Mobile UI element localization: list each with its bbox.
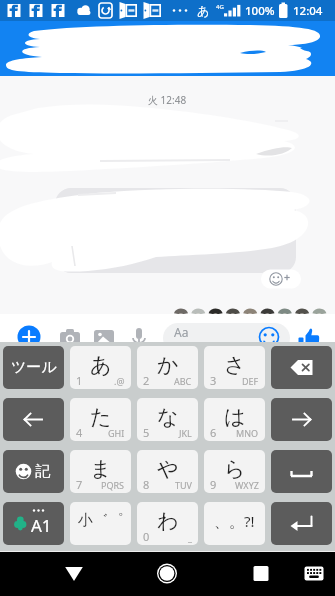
staticText: Aa xyxy=(174,324,189,340)
staticText: 0 xyxy=(143,529,150,544)
button[interactable]: emojikey xyxy=(3,450,64,493)
staticText: 4 xyxy=(76,425,83,440)
staticText: MNO xyxy=(236,427,259,439)
button[interactable]: Home xyxy=(147,552,187,596)
staticText: _ xyxy=(188,531,192,543)
button[interactable]: right xyxy=(271,398,332,441)
staticText: DEF xyxy=(242,375,259,387)
button[interactable]: enter xyxy=(271,502,332,545)
button[interactable]: た xyxy=(70,398,131,441)
button[interactable]: な xyxy=(137,398,198,441)
staticText: 記 xyxy=(35,462,50,481)
staticText: 1 xyxy=(76,373,83,388)
staticText: は xyxy=(224,404,246,430)
staticText: 火 12:48 xyxy=(148,93,187,107)
staticText: 小゛゜ xyxy=(78,511,124,530)
staticText: .@ xyxy=(114,375,125,387)
staticText: 7 xyxy=(76,477,83,492)
button[interactable]: bksp xyxy=(271,346,332,389)
staticText: 6 xyxy=(210,425,217,440)
button[interactable]: あ xyxy=(70,346,131,389)
staticText: ま xyxy=(90,456,112,482)
staticText: 9 xyxy=(210,477,217,492)
staticText: あ xyxy=(90,352,112,378)
staticText: 8 xyxy=(143,477,150,492)
staticText: TUV xyxy=(175,479,192,491)
button[interactable]: や xyxy=(137,450,198,493)
staticText: さ xyxy=(224,352,246,378)
button[interactable]: か xyxy=(137,346,198,389)
button[interactable]: は xyxy=(204,398,265,441)
staticText: 2 xyxy=(143,373,150,388)
staticText: ツール xyxy=(11,358,57,377)
staticText: 12:04 xyxy=(293,3,323,19)
button[interactable]: わ xyxy=(137,502,198,545)
staticText: 、。?! xyxy=(214,511,255,531)
staticText: PQRS xyxy=(101,479,125,491)
button[interactable]: ま xyxy=(70,450,131,493)
staticText: ら xyxy=(224,456,246,482)
button[interactable]: Switch keyboard xyxy=(294,552,334,596)
staticText: ABC xyxy=(174,375,192,387)
button[interactable]: さ xyxy=(204,346,265,389)
staticText: 3 xyxy=(210,373,217,388)
button[interactable]: Back xyxy=(54,552,94,596)
staticText: 5 xyxy=(143,425,150,440)
button[interactable]: ツール xyxy=(3,346,64,389)
button[interactable]: 小゛゜ xyxy=(70,502,131,545)
button[interactable]: a1 xyxy=(3,502,64,545)
staticText: や xyxy=(157,456,179,482)
button[interactable]: Recent apps xyxy=(241,552,281,596)
staticText: JKL xyxy=(179,427,192,439)
staticText: あ xyxy=(197,3,210,18)
staticText: わ xyxy=(157,508,179,534)
staticText: 4G xyxy=(216,3,224,11)
staticText: WXYZ xyxy=(235,479,259,491)
button[interactable]: ら xyxy=(204,450,265,493)
staticText: た xyxy=(90,404,112,430)
staticText: GHI xyxy=(108,427,125,439)
staticText: か xyxy=(157,352,179,378)
staticText: な xyxy=(157,404,179,430)
button[interactable]: 、。?! xyxy=(204,502,265,545)
staticText: 100% xyxy=(245,3,275,19)
staticText: A1 xyxy=(31,514,52,537)
button[interactable]: space xyxy=(271,450,332,493)
button[interactable]: left xyxy=(3,398,64,441)
